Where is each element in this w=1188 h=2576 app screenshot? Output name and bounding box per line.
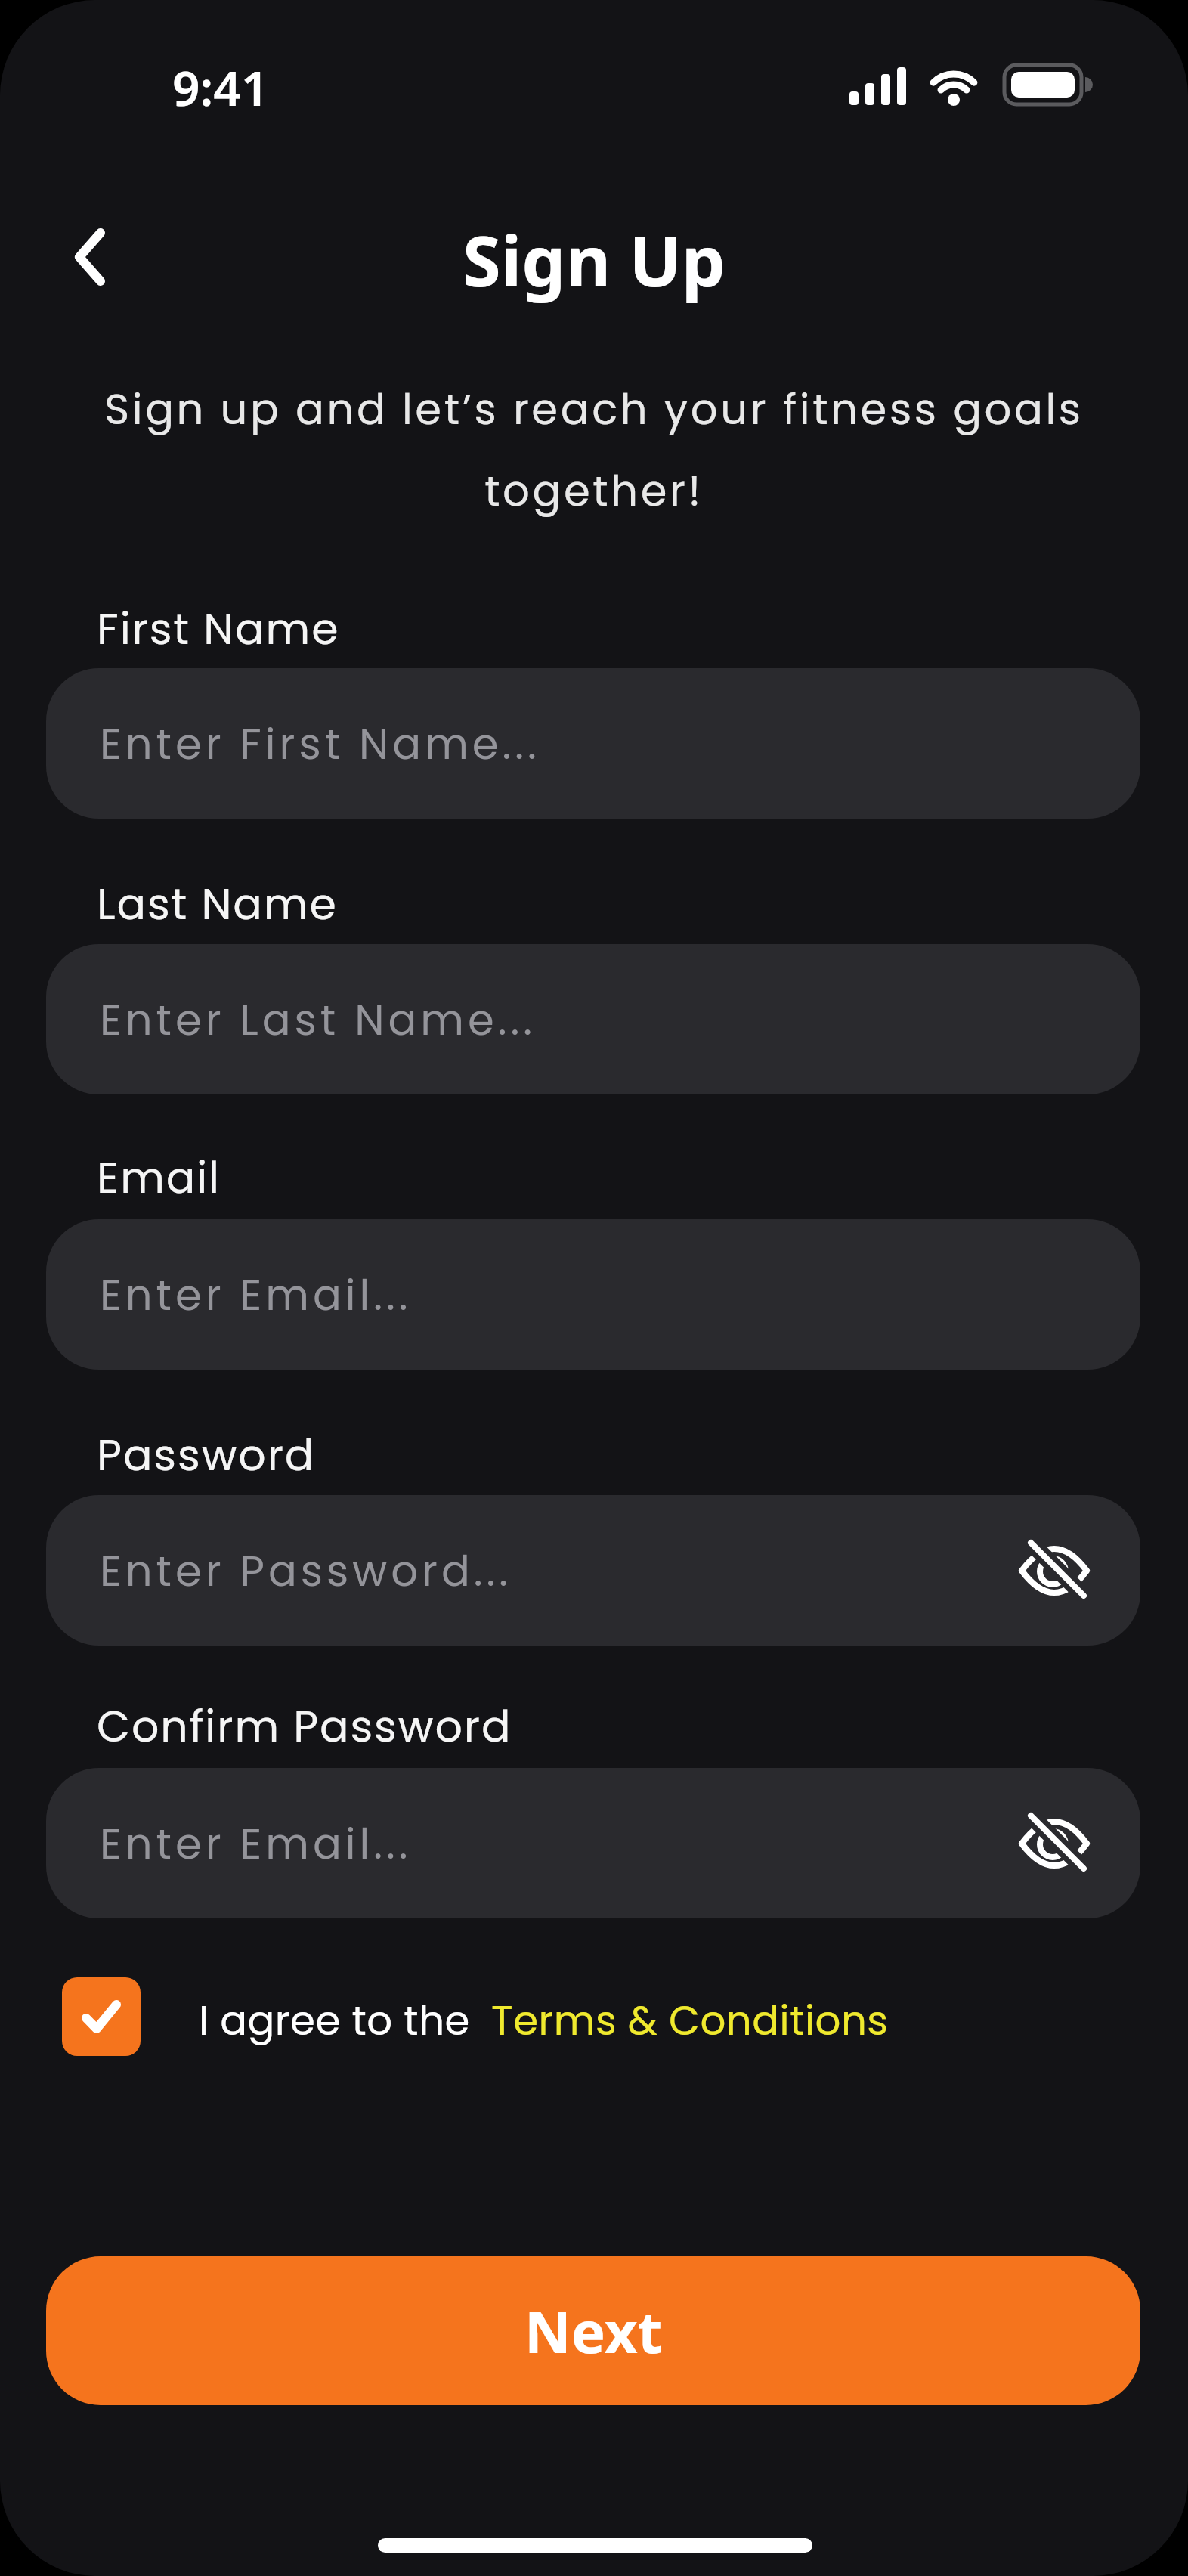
button[interactable] [48, 212, 131, 302]
button[interactable]: I agree to the [199, 1992, 481, 2048]
staticText: Confirm Password [97, 1696, 512, 1757]
button[interactable]: Enter Password... [46, 1495, 1140, 1646]
button[interactable]: Enter First Name... [46, 668, 1140, 819]
staticText: Terms & Conditions [491, 1992, 889, 2048]
staticText: Next [524, 2292, 663, 2370]
button[interactable]: Enter Email... [46, 1768, 1140, 1918]
staticText: Enter Last Name... [100, 990, 537, 1049]
button[interactable]: Enter Last Name... [46, 944, 1140, 1094]
staticText: Sign up and let’s reach your fitness goa… [0, 379, 1188, 521]
staticText: First Name [97, 599, 340, 659]
staticText: Password [97, 1425, 316, 1485]
staticText: Enter First Name... [100, 714, 540, 773]
button[interactable]: Terms & Conditions [491, 1992, 889, 2048]
button[interactable]: Next [46, 2256, 1140, 2405]
button[interactable]: Enter Email... [46, 1219, 1140, 1370]
staticText: Email [97, 1147, 221, 1208]
staticText: Sign Up [0, 212, 1188, 307]
staticText: 9:41 [172, 54, 269, 120]
staticText: Enter Email... [100, 1265, 412, 1324]
staticText: I agree to the [199, 1992, 481, 2048]
staticText: Last Name [97, 874, 338, 934]
staticText: Enter Password... [100, 1541, 512, 1600]
button[interactable] [62, 1977, 141, 2056]
staticText: Enter Email... [100, 1814, 412, 1873]
